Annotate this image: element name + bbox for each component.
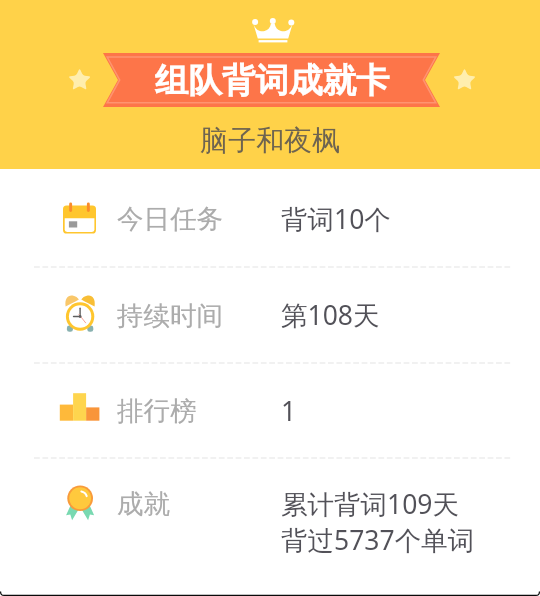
staticText: 持续时间	[117, 299, 223, 332]
button[interactable]: 今日任务	[0, 168, 540, 266]
staticText: 累计背词109天	[281, 486, 459, 522]
staticText: 背词10个	[281, 201, 391, 237]
staticText: 组队背词成就卡	[155, 60, 390, 102]
staticText: 排行榜	[117, 394, 197, 427]
button[interactable]: 持续时间	[0, 266, 540, 362]
staticText: 成就	[117, 487, 170, 520]
staticText: 背过5737个单词	[281, 522, 475, 558]
button[interactable]: 排行榜	[0, 362, 540, 457]
staticText: 今日任务	[117, 202, 223, 235]
staticText: 第108天	[281, 297, 380, 333]
staticText: 脑子和夜枫	[200, 123, 340, 158]
staticText: 1	[281, 393, 297, 429]
button[interactable]: 成就	[0, 457, 540, 596]
